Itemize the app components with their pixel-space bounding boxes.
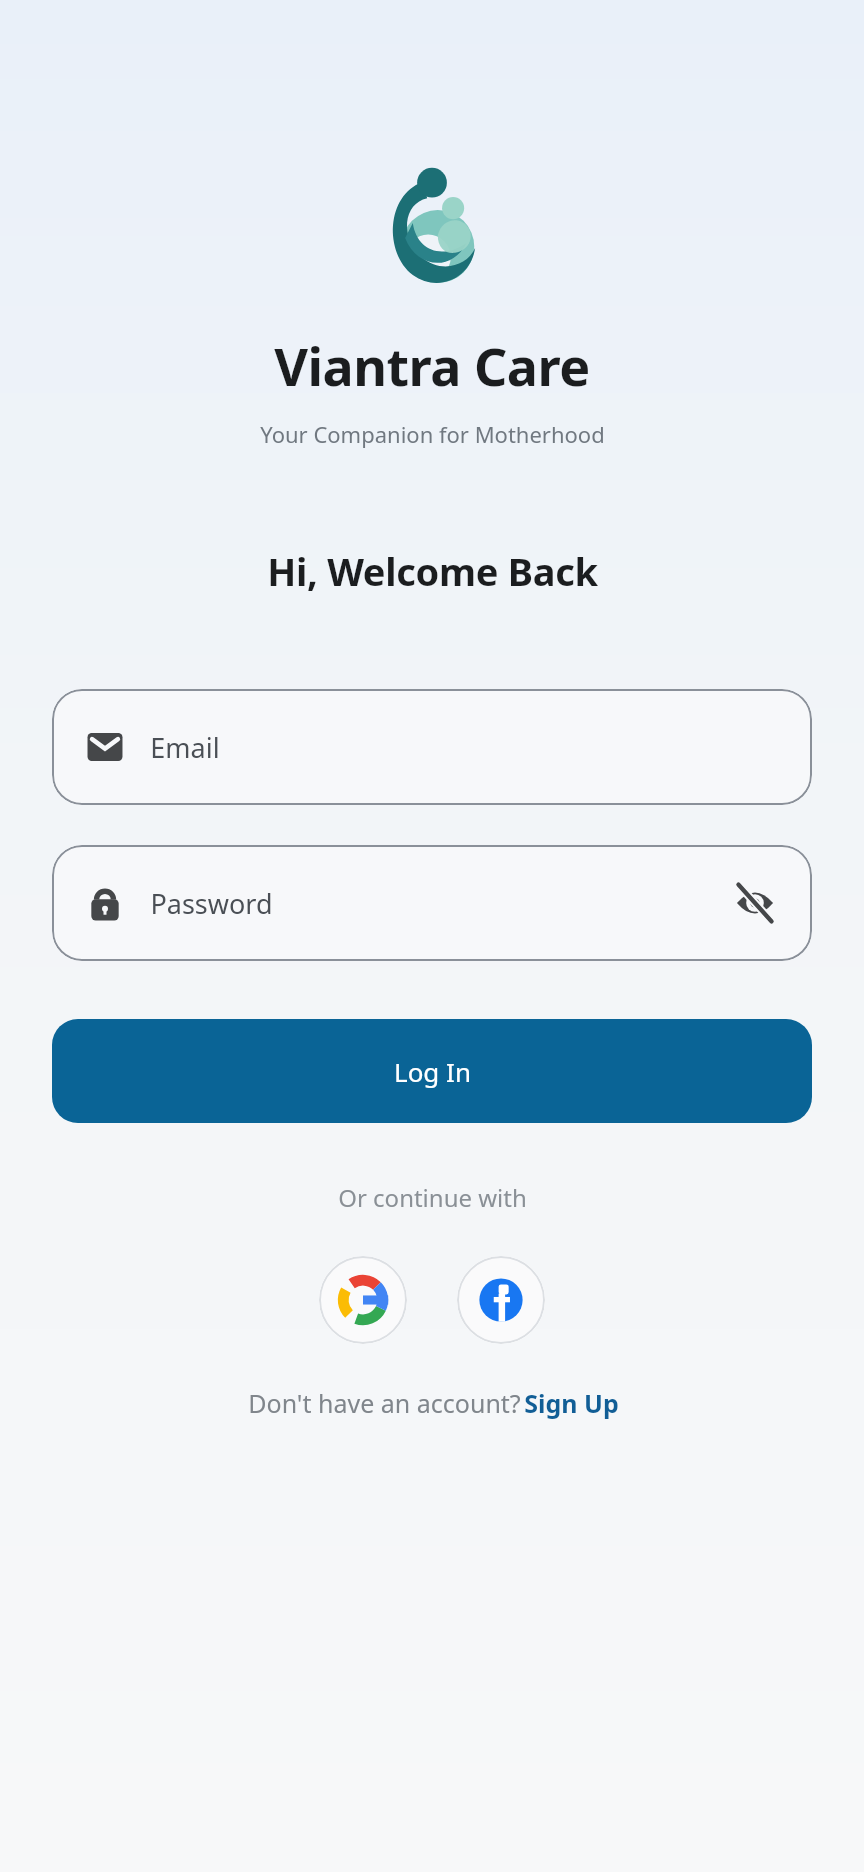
staticText: Sign Up [524,1386,619,1420]
staticText: Or continue with [338,1181,527,1214]
button[interactable]: Sign in with Google [319,1256,407,1344]
button[interactable]: Sign in with Facebook [457,1256,545,1344]
staticText: Don't have an account? [245,1386,524,1420]
staticText: Hi, Welcome Back [267,545,598,597]
staticText: Password [150,885,273,922]
button[interactable]: Sign Up [524,1386,619,1420]
button[interactable]: Password [52,845,812,961]
button[interactable]: Log In [52,1019,812,1123]
button[interactable]: Show password [728,876,782,930]
button[interactable]: Email [52,689,812,805]
staticText: Viantra Care [274,330,590,401]
staticText: Log In [394,1054,471,1089]
staticText: Your Companion for Motherhood [260,419,605,449]
staticText: Email [150,729,220,766]
